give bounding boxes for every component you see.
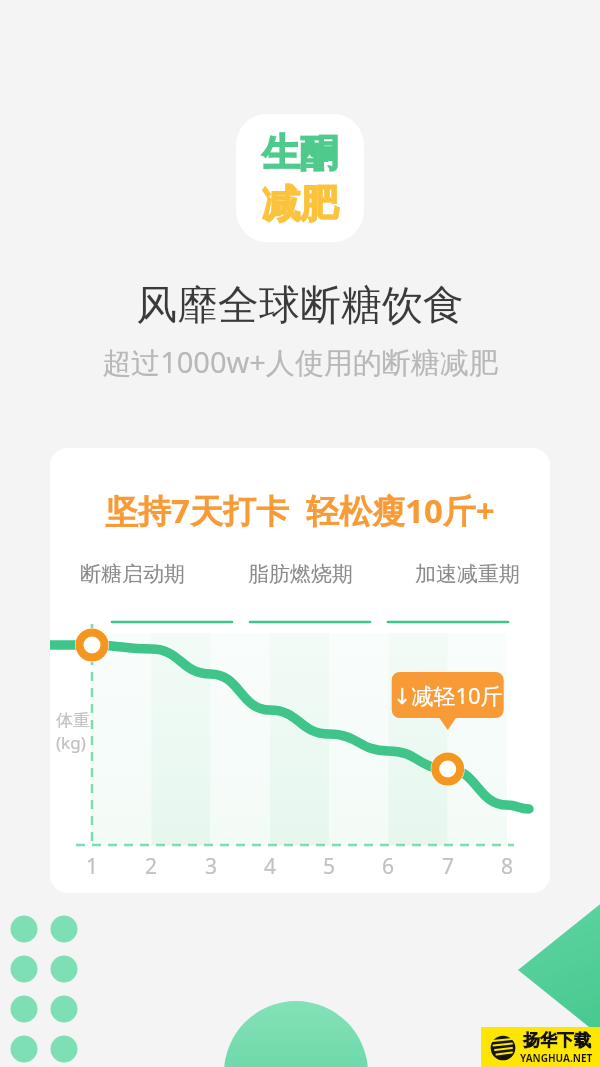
- button[interactable]: 生酮减肥 app icon: [236, 114, 364, 242]
- staticText: 5: [323, 852, 336, 881]
- button[interactable]: 坚持7天打卡 轻松瘦10斤+: [50, 448, 550, 893]
- staticText: 3: [205, 852, 218, 881]
- staticText: 4: [264, 852, 277, 881]
- staticText: 断糖启动期: [80, 561, 185, 587]
- staticText: 减肥: [262, 180, 338, 228]
- staticText: 7: [442, 852, 455, 881]
- staticText: 脂肪燃烧期: [248, 561, 353, 587]
- staticText: 2: [145, 852, 158, 881]
- staticText: YANGHUA.NET: [520, 1051, 593, 1065]
- button[interactable]: 扬华下载 watermark: [481, 1027, 600, 1067]
- staticText: (kg): [56, 731, 86, 754]
- staticText: 8: [501, 852, 514, 881]
- staticText: 生酮: [262, 129, 338, 177]
- staticText: 超过1000w+人使用的断糖减肥: [102, 342, 498, 382]
- staticText: 6: [382, 852, 395, 881]
- staticText: 坚持7天打卡 轻松瘦10斤+: [105, 488, 495, 533]
- staticText: 1: [86, 852, 99, 881]
- staticText: 扬华下载: [523, 1030, 591, 1051]
- staticText: 加速减重期: [415, 561, 520, 587]
- staticText: ↓减轻10斤: [393, 680, 503, 710]
- staticText: 风靡全球断糖饮食: [136, 280, 464, 332]
- staticText: 体重: [56, 710, 90, 731]
